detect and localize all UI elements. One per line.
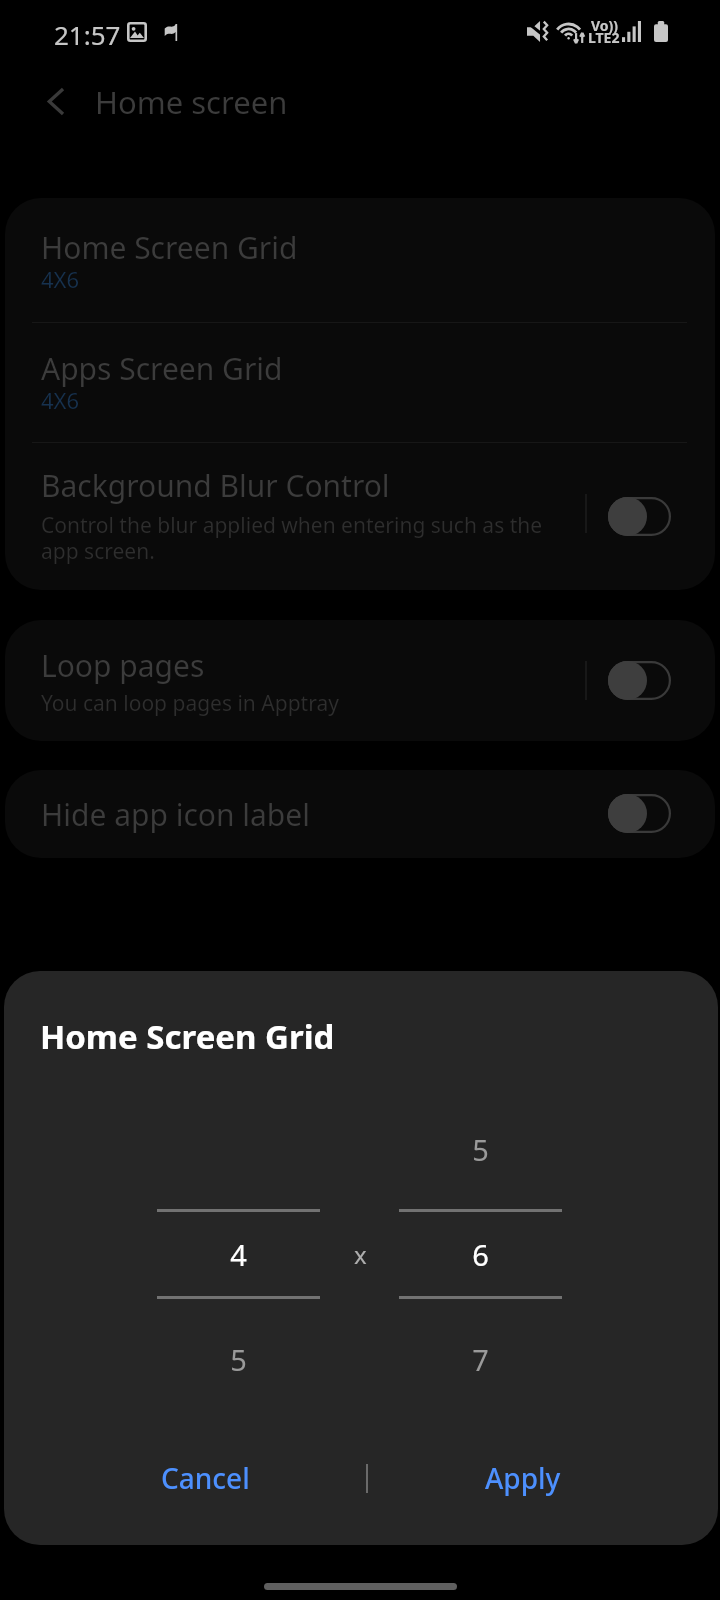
staticText: Home Screen Grid: [41, 227, 298, 268]
staticText: Control the blur applied when entering s…: [41, 511, 561, 566]
button[interactable]: Toggle: [600, 790, 672, 836]
button[interactable]: Loop pages: [5, 620, 585, 741]
button[interactable]: 4: [157, 1212, 320, 1296]
staticText: 4X6: [41, 264, 80, 294]
button[interactable]: 7: [399, 1326, 562, 1392]
button[interactable]: 5: [399, 1116, 562, 1182]
staticText: 21:57: [54, 17, 121, 52]
staticText: Vo)): [591, 16, 619, 35]
staticText: 4: [230, 1235, 247, 1274]
button[interactable]: Back: [31, 77, 79, 125]
staticText: Apply: [485, 1459, 561, 1497]
staticText: Loop pages: [41, 645, 205, 686]
button[interactable]: Toggle: [600, 493, 672, 539]
staticText: 7: [472, 1340, 489, 1379]
button[interactable]: Home Screen Grid: [5, 198, 715, 322]
button[interactable]: 5: [157, 1326, 320, 1392]
staticText: Cancel: [161, 1459, 250, 1497]
button[interactable]: Apply: [358, 1447, 688, 1509]
button[interactable]: Background Blur Control: [5, 443, 585, 590]
staticText: You can loop pages in Apptray: [41, 689, 339, 718]
button[interactable]: Apps Screen Grid: [5, 323, 715, 442]
button[interactable]: Cancel: [40, 1447, 370, 1509]
staticText: x: [354, 1238, 367, 1271]
staticText: 5: [230, 1340, 247, 1379]
staticText: Home screen: [95, 81, 288, 123]
staticText: LTE2: [588, 28, 620, 47]
staticText: 4X6: [41, 385, 80, 415]
staticText: Background Blur Control: [41, 465, 390, 506]
staticText: Hide app icon label: [41, 794, 310, 835]
staticText: 6: [472, 1235, 489, 1274]
staticText: 5: [472, 1130, 489, 1169]
button[interactable]: 6: [399, 1212, 562, 1296]
button[interactable]: Hide app icon label: [5, 770, 595, 858]
button[interactable]: Toggle: [600, 657, 672, 703]
staticText: Home Screen Grid: [40, 1014, 335, 1059]
staticText: Apps Screen Grid: [41, 348, 283, 389]
